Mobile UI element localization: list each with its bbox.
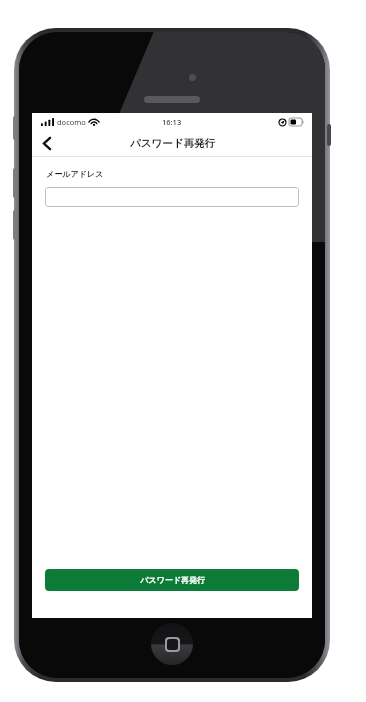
button[interactable]: Back [32,130,62,156]
staticText: パスワード再発行 [130,137,215,150]
staticText: パスワード再発行 [140,575,205,585]
staticText: メールアドレス [46,169,104,179]
staticText: 16:13 [162,117,182,127]
button[interactable]: Home [151,623,193,665]
button[interactable]: パスワード再発行 [45,569,299,591]
button[interactable]: Email address input [45,187,299,207]
staticText: docomo [57,117,86,127]
